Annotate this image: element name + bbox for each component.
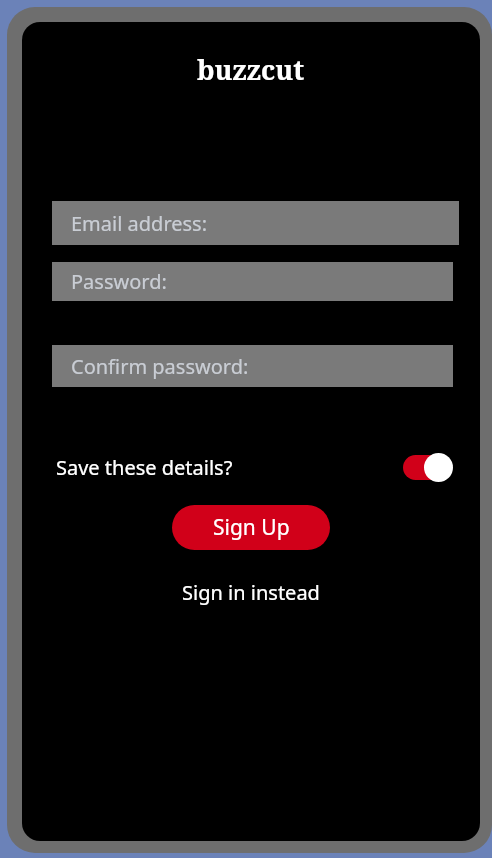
staticText: Save these details? [56,454,233,481]
button[interactable]: Save these details toggle [403,452,451,482]
staticText: buzzcut [197,51,305,88]
staticText: Password: [71,268,167,295]
button[interactable]: Email address: [52,201,459,245]
staticText: Sign Up [213,513,290,542]
button[interactable]: Confirm password: [52,345,453,387]
staticText: Confirm password: [71,353,249,380]
staticText: Sign in instead [182,579,320,606]
button[interactable]: Sign in instead [174,575,328,610]
staticText: Email address: [71,210,208,237]
button[interactable]: Password: [52,262,453,301]
button[interactable]: Sign Up [172,505,330,550]
